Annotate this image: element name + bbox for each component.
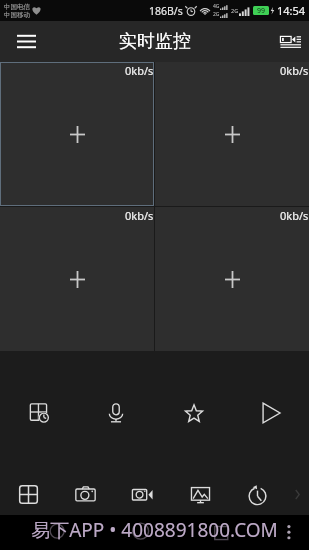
staticText: 14:54	[277, 3, 306, 18]
staticText: 中国移动	[4, 11, 30, 19]
staticText: 0kb/s	[280, 208, 309, 223]
button[interactable]: Playback history	[229, 474, 285, 515]
button[interactable]: Microphone	[77, 388, 154, 438]
button[interactable]: Snapshot	[57, 474, 113, 515]
button[interactable]: Favorite	[155, 388, 232, 438]
staticText: 186B/s	[149, 4, 183, 18]
staticText: 中国电信	[4, 3, 30, 11]
button[interactable]: Device list	[271, 21, 309, 62]
staticText: 2G	[231, 7, 239, 14]
staticText: 2G	[213, 11, 220, 18]
staticText: 99	[257, 6, 266, 15]
button[interactable]: 0kb/s	[155, 207, 309, 351]
button[interactable]: Gallery	[172, 474, 228, 515]
button[interactable]: 0kb/s	[0, 62, 154, 206]
button[interactable]: 0kb/s	[155, 62, 309, 206]
button[interactable]: Open navigation menu	[0, 21, 52, 62]
staticText: 0kb/s	[280, 63, 309, 78]
button[interactable]: 0kb/s	[0, 207, 154, 351]
button[interactable]: Play	[232, 388, 309, 438]
staticText: 易下APP • 4008891800.COM	[31, 517, 278, 543]
staticText: 0kb/s	[125, 208, 154, 223]
button[interactable]: Playback	[0, 388, 77, 438]
staticText: 实时监控	[119, 30, 191, 53]
button[interactable]: More	[286, 474, 309, 515]
staticText: 4G	[213, 3, 220, 10]
staticText: 0kb/s	[125, 63, 154, 78]
button[interactable]: Record	[114, 474, 170, 515]
button[interactable]: Split view	[0, 474, 56, 515]
